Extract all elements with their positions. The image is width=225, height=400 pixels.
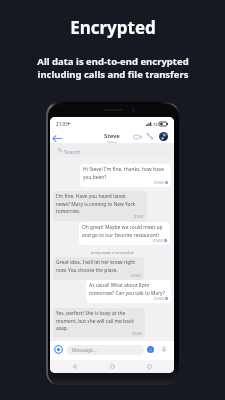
button[interactable]: Yes, perfect! She is busy at the moment,… [53, 308, 145, 338]
staticText: Message... [72, 347, 97, 354]
button[interactable]: Recents [145, 362, 154, 371]
staticText: Search [64, 148, 81, 155]
staticText: Great idea, I will let her know right no… [56, 259, 136, 273]
button[interactable]: Profile [159, 132, 168, 141]
staticText: Hi Steve! I'm fine, thanks, how have you… [83, 166, 164, 180]
button[interactable]: Attach [54, 345, 63, 354]
button[interactable]: Hi Steve! I'm fine, thanks, how have you… [80, 164, 171, 187]
button[interactable]: Message... [67, 345, 144, 355]
button[interactable]: Oh great! Maybe we could meet up and go … [79, 222, 170, 245]
staticText: 21:02 [153, 238, 163, 243]
staticText: 21:04 [132, 331, 142, 336]
staticText: LTE [151, 122, 158, 128]
button[interactable]: Home [108, 362, 117, 371]
staticText: 21:01 [134, 214, 144, 219]
button[interactable]: Emoji [147, 346, 154, 353]
staticText: Encrypted [70, 16, 156, 39]
staticText: I'm fine. Have you heard latest news? Ma… [56, 193, 136, 214]
staticText: 21:05 [56, 121, 68, 127]
staticText: 21:02 [131, 273, 141, 278]
button[interactable]: I'm fine. Have you heard latest news? Ma… [53, 191, 147, 221]
staticText: Jenny made a screenshot [91, 250, 134, 255]
button[interactable]: Back [52, 133, 63, 144]
staticText: 21:03 [154, 296, 164, 301]
staticText: Steve [104, 132, 120, 140]
staticText: Oh great! Maybe we could meet up and go … [82, 224, 163, 238]
button[interactable]: Voice message [160, 345, 168, 353]
button[interactable]: Call [145, 131, 155, 141]
button[interactable]: Back [70, 362, 79, 371]
button[interactable]: As usual! What about 8pm tomorrow? Can y… [86, 280, 171, 303]
staticText: Yes, perfect! She is busy at the moment,… [56, 310, 134, 331]
button[interactable]: Video call [133, 132, 143, 142]
staticText: All data is end-to-end encrypted includi… [37, 55, 189, 81]
staticText: Online [107, 140, 118, 144]
button[interactable]: Great idea, I will let her know right no… [53, 257, 144, 280]
staticText: 21:00 [154, 180, 164, 185]
staticText: As usual! What about 8pm tomorrow? Can y… [89, 282, 165, 296]
